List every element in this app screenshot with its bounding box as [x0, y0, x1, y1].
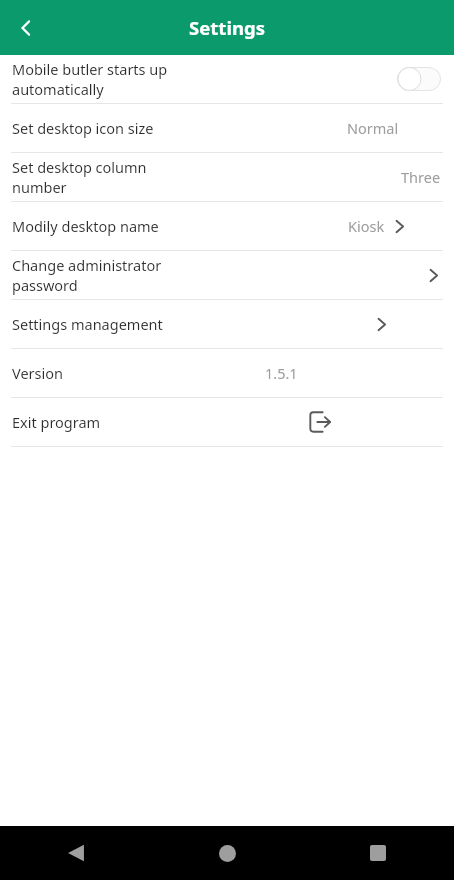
staticText: Set desktop icon size: [12, 118, 154, 138]
button[interactable]: Back: [0, 2, 52, 54]
staticText: Settings: [189, 15, 265, 40]
button[interactable]: Set desktop icon size: [0, 104, 454, 152]
button[interactable]: Home: [203, 829, 251, 877]
staticText: Set desktop column number: [12, 157, 202, 197]
staticText: Mobile butler starts up automatically: [12, 59, 200, 99]
button[interactable]: Back: [52, 829, 100, 877]
staticText: Normal: [347, 118, 399, 138]
button[interactable]: Settings management: [0, 300, 454, 348]
button[interactable]: Set desktop column number: [0, 153, 454, 201]
button[interactable]: Modily desktop name: [0, 202, 454, 250]
button[interactable]: Version: [0, 349, 454, 397]
button[interactable]: Exit program: [0, 398, 454, 446]
button[interactable]: Mobile butler starts up automatically: [0, 55, 454, 103]
staticText: Version: [12, 363, 63, 383]
staticText: 1.5.1: [265, 363, 298, 383]
staticText: Kiosk: [348, 216, 385, 236]
button[interactable]: Change administrator password: [0, 251, 454, 299]
staticText: Settings management: [12, 314, 163, 334]
staticText: Exit program: [12, 412, 101, 432]
staticText: Modily desktop name: [12, 216, 159, 236]
staticText: Three: [401, 167, 441, 187]
button[interactable]: Mobile butler auto start toggle: [397, 67, 441, 91]
staticText: Change administrator password: [12, 255, 215, 295]
button[interactable]: Recent apps: [354, 829, 402, 877]
button[interactable]: Exit program: [307, 409, 333, 435]
